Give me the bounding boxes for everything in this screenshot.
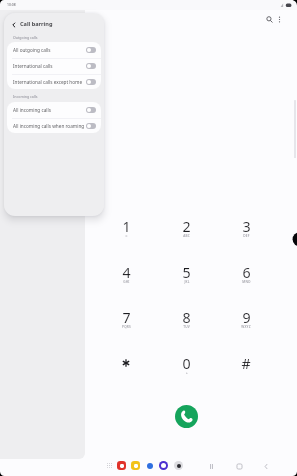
staticText: All outgoing calls — [13, 47, 86, 53]
button[interactable]: 9 — [225, 308, 267, 335]
button[interactable] — [86, 123, 96, 129]
button[interactable]: 7 — [105, 308, 147, 335]
button[interactable]: 4 — [105, 263, 147, 290]
button[interactable]: App — [117, 461, 126, 470]
button[interactable]: Search — [263, 13, 276, 26]
button[interactable] — [86, 107, 96, 113]
staticText: 9 — [242, 308, 251, 327]
staticText: Incoming calls — [13, 94, 38, 99]
button[interactable]: 5 — [165, 263, 207, 290]
button[interactable] — [86, 47, 96, 53]
button[interactable]: 1 — [105, 217, 147, 244]
button[interactable]: App — [147, 463, 153, 469]
staticText: 4 — [122, 263, 131, 282]
button[interactable]: More options — [273, 13, 286, 26]
staticText: DEF — [243, 234, 250, 238]
button[interactable]: Call — [175, 405, 198, 428]
button[interactable]: All outgoing calls — [7, 42, 101, 58]
button[interactable] — [105, 354, 147, 381]
staticText: ABC — [183, 234, 190, 238]
staticText: 6 — [242, 263, 251, 282]
staticText: International calls — [13, 63, 86, 69]
button[interactable]: International calls — [7, 58, 101, 74]
staticText: GHI — [123, 280, 130, 284]
staticText: 5 — [182, 263, 191, 282]
button[interactable]: 6 — [225, 263, 267, 290]
button[interactable]: App — [159, 461, 168, 470]
staticText: 1 — [122, 217, 131, 236]
staticText: 7 — [122, 308, 131, 327]
button[interactable]: Back — [261, 461, 272, 472]
staticText: + — [186, 371, 188, 375]
staticText: ∞ — [125, 234, 128, 238]
button[interactable]: Back — [7, 18, 20, 31]
button[interactable]: 8 — [165, 308, 207, 335]
button[interactable]: 3 — [225, 217, 267, 244]
staticText: JKL — [184, 280, 190, 284]
staticText: # — [241, 354, 251, 373]
staticText: 0 — [182, 354, 191, 373]
button[interactable]: Camera — [174, 461, 183, 470]
staticText: 2 — [182, 217, 191, 236]
button[interactable]: App — [131, 461, 140, 470]
staticText: 8 — [182, 308, 191, 327]
button[interactable]: Recents — [206, 461, 217, 472]
staticText: 3 — [242, 217, 251, 236]
button[interactable]: 0 — [165, 354, 207, 381]
staticText: TUV — [183, 325, 190, 329]
staticText: WXYZ — [241, 325, 251, 329]
button[interactable]: All incoming calls — [7, 102, 101, 118]
staticText: All incoming calls when roaming — [13, 123, 86, 129]
staticText: Call barring — [20, 20, 53, 28]
button[interactable] — [86, 63, 96, 69]
button[interactable]: 2 — [165, 217, 207, 244]
button[interactable]: International calls except home — [7, 74, 101, 89]
button[interactable]: All apps — [105, 461, 114, 470]
staticText: All incoming calls — [13, 107, 86, 113]
button[interactable]: Home — [234, 461, 245, 472]
staticText: 10:08 — [7, 2, 16, 7]
button[interactable] — [86, 79, 96, 85]
staticText: Outgoing calls — [13, 35, 38, 40]
staticText: International calls except home — [13, 79, 86, 85]
button[interactable]: # — [225, 354, 267, 381]
staticText: MNO — [242, 280, 251, 284]
button[interactable]: All incoming calls when roaming — [7, 118, 101, 133]
staticText: PQRS — [122, 325, 131, 329]
